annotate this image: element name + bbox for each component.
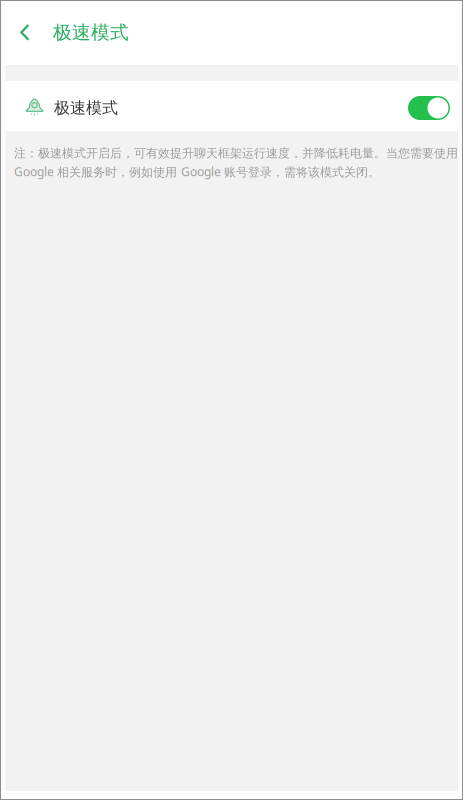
staticText: 极速模式	[53, 21, 129, 44]
button[interactable]: 极速模式开关	[408, 92, 463, 120]
button[interactable]: Back	[0, 0, 50, 65]
staticText: 极速模式	[54, 98, 118, 118]
staticText: 注：极速模式开启后，可有效提升聊天框架运行速度，并降低耗电量。当您需要使用 Go…	[14, 146, 458, 180]
button[interactable]: 极速模式	[0, 81, 463, 131]
